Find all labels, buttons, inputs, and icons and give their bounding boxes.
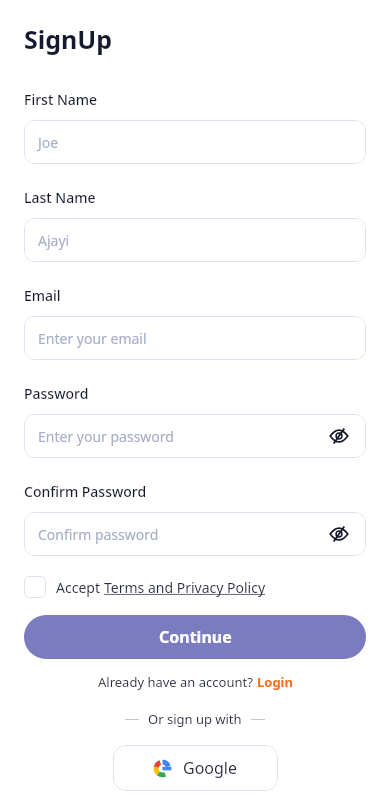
button[interactable]: Toggle password visibility xyxy=(326,423,352,449)
button[interactable]: Continue xyxy=(24,615,366,659)
button[interactable]: Accept xyxy=(24,576,366,598)
staticText: Or sign up with xyxy=(148,710,242,728)
button[interactable]: Joe xyxy=(24,120,366,164)
button[interactable]: Google xyxy=(113,745,278,791)
button[interactable]: Login xyxy=(257,673,293,691)
staticText: Confirm password xyxy=(38,525,159,544)
button[interactable]: Toggle password visibility xyxy=(326,521,352,547)
staticText: Enter your email xyxy=(38,329,147,348)
staticText: Ajayi xyxy=(38,231,70,250)
staticText: Login xyxy=(257,673,293,691)
staticText: Terms and Privacy Policy xyxy=(104,578,266,597)
staticText: Email xyxy=(24,286,61,305)
staticText: Accept xyxy=(56,578,104,597)
staticText: Continue xyxy=(159,626,232,648)
staticText: Password xyxy=(24,384,89,403)
button[interactable]: Enter your password xyxy=(24,414,366,458)
button[interactable]: Confirm password xyxy=(24,512,366,556)
staticText: Joe xyxy=(38,133,59,152)
button[interactable]: Ajayi xyxy=(24,218,366,262)
staticText: SignUp xyxy=(24,22,113,56)
staticText: First Name xyxy=(24,90,98,109)
staticText: Confirm Password xyxy=(24,482,147,501)
staticText: Already have an account? xyxy=(98,673,257,691)
staticText: Enter your password xyxy=(38,427,174,446)
button[interactable]: Enter your email xyxy=(24,316,366,360)
staticText: Google xyxy=(183,757,238,779)
staticText: Last Name xyxy=(24,188,96,207)
